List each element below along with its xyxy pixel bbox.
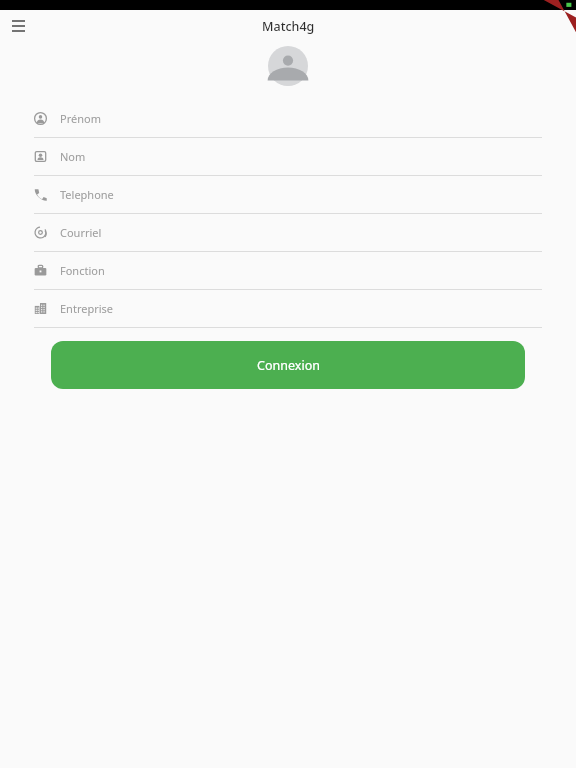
staticText: Connexion (257, 357, 320, 374)
staticText: Entreprise (60, 301, 114, 316)
staticText: Prénom (60, 111, 101, 126)
staticText: Match4g (262, 18, 315, 35)
button[interactable]: Telephone (34, 176, 542, 214)
staticText: Courriel (60, 225, 102, 240)
button[interactable]: Menu (4, 12, 32, 40)
staticText: Telephone (60, 187, 114, 202)
button[interactable]: Entreprise (34, 290, 542, 328)
button[interactable]: Connexion (51, 341, 525, 389)
staticText: Nom (60, 149, 86, 164)
staticText: Fonction (60, 263, 105, 278)
button[interactable]: Nom (34, 138, 542, 176)
button[interactable]: Fonction (34, 252, 542, 290)
button[interactable]: Prénom (34, 100, 542, 138)
button[interactable]: Courriel (34, 214, 542, 252)
